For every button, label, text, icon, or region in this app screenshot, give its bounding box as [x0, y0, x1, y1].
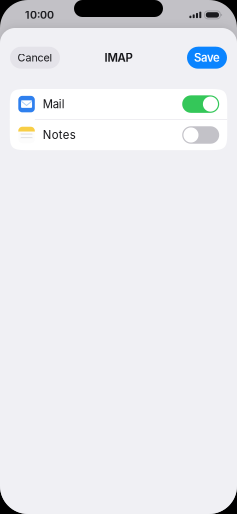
- button[interactable]: Notes: [10, 120, 227, 150]
- staticText: Mail: [43, 97, 65, 111]
- staticText: Notes: [43, 128, 76, 142]
- button[interactable]: Cancel: [10, 47, 60, 69]
- staticText: Cancel: [17, 51, 52, 64]
- button[interactable]: Mail: [10, 89, 227, 119]
- button[interactable]: Save: [187, 47, 227, 69]
- staticText: Save: [194, 51, 220, 64]
- staticText: IMAP: [104, 51, 132, 64]
- staticText: 10:00: [25, 8, 54, 21]
